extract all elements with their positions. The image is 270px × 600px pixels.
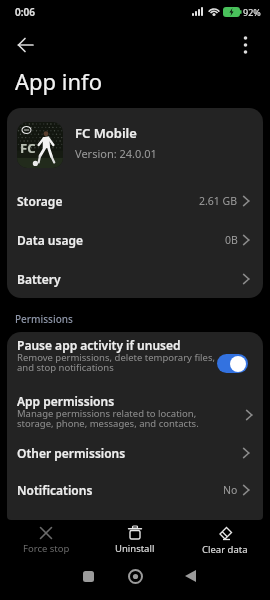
button[interactable]: Pause app activity if unused [7, 332, 263, 382]
button[interactable]: Uninstall [91, 526, 179, 555]
button[interactable]: Clear data [181, 526, 269, 556]
button[interactable]: FC [7, 108, 263, 181]
button[interactable] [121, 562, 149, 590]
button[interactable]: Data usage [7, 220, 263, 259]
staticText: No [223, 483, 238, 497]
button[interactable] [217, 354, 248, 373]
button[interactable]: Battery [7, 259, 263, 298]
staticText: Clear data [202, 543, 248, 556]
button[interactable] [74, 562, 102, 590]
staticText: FC [20, 139, 36, 157]
staticText: Pause app activity if unused [17, 337, 181, 353]
staticText: 2.61 GB [199, 194, 238, 208]
staticText: 0B [225, 233, 238, 247]
button[interactable] [176, 562, 204, 590]
staticText: FC Mobile [75, 124, 137, 142]
button[interactable]: Force stop [2, 526, 90, 555]
staticText: Other permissions [17, 445, 126, 461]
staticText: Permissions [15, 312, 73, 326]
button[interactable]: Notifications [7, 474, 263, 512]
staticText: Remove permissions, delete temporary fil… [17, 351, 216, 374]
staticText: Force stop [23, 542, 70, 555]
staticText: Storage [17, 193, 63, 209]
staticText: Uninstall [115, 542, 155, 555]
button[interactable]: Storage [7, 181, 263, 220]
staticText: 92% [243, 6, 261, 18]
button[interactable] [8, 30, 44, 60]
staticText: Manage permissions related to location, … [17, 407, 199, 430]
staticText: App info [15, 66, 102, 96]
staticText: Battery [17, 271, 61, 287]
staticText: Notifications [17, 482, 93, 498]
button[interactable] [230, 30, 260, 60]
button[interactable]: Other permissions [7, 437, 263, 474]
staticText: Version: 24.0.01 [75, 146, 157, 161]
staticText: 0:06 [15, 5, 35, 19]
button[interactable]: App permissions [7, 382, 263, 437]
button[interactable]: FC [17, 122, 63, 168]
staticText: App permissions [17, 393, 115, 409]
staticText: Data usage [17, 232, 83, 248]
